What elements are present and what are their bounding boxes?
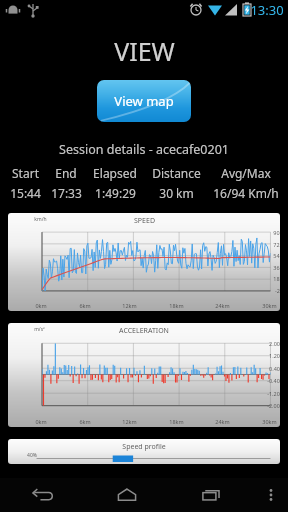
- staticText: 0km: [35, 302, 47, 309]
- staticText: VIEW: [114, 34, 175, 68]
- staticText: 40%: [27, 452, 37, 459]
- staticText: 24km: [215, 302, 230, 309]
- staticText: 12km: [122, 418, 137, 425]
- staticText: 15:44: [10, 185, 41, 201]
- button[interactable]: SPEED: [8, 213, 280, 311]
- button[interactable]: Home: [84, 478, 169, 512]
- staticText: 1:49:29: [95, 185, 136, 201]
- staticText: 12km: [122, 302, 137, 309]
- staticText: km/h: [34, 216, 47, 223]
- staticText: m/s²: [34, 326, 45, 333]
- staticText: Avg/Max: [221, 165, 271, 181]
- staticText: Start: [12, 165, 39, 181]
- staticText: Speed profile: [122, 442, 166, 452]
- staticText: 24km: [215, 418, 230, 425]
- staticText: ACCELERATION: [119, 326, 169, 336]
- staticText: -0.40: [267, 377, 280, 384]
- staticText: Session details - acecafe0201: [59, 141, 229, 158]
- staticText: 6km: [79, 302, 91, 309]
- staticText: 18km: [169, 302, 184, 309]
- staticText: 18km: [169, 418, 184, 425]
- staticText: -1.20: [267, 390, 280, 397]
- staticText: Distance: [152, 165, 201, 181]
- staticText: -2: [275, 287, 280, 294]
- staticText: 16/94 Km/h: [213, 185, 279, 201]
- staticText: 30 km: [159, 185, 194, 201]
- button[interactable]: Back: [0, 478, 84, 512]
- staticText: Elapsed: [93, 165, 137, 181]
- staticText: 90: [273, 229, 280, 236]
- button[interactable]: ACCELERATION: [8, 323, 280, 427]
- staticText: 17:33: [51, 185, 82, 201]
- staticText: 6km: [79, 418, 91, 425]
- staticText: 54: [273, 252, 280, 259]
- staticText: 30km: [262, 418, 277, 425]
- staticText: End: [55, 165, 77, 181]
- button[interactable]: Speed profile: [8, 439, 280, 464]
- staticText: 36: [273, 264, 280, 271]
- staticText: -2.00: [267, 402, 280, 409]
- staticText: View map: [114, 92, 174, 110]
- staticText: 0.40: [269, 365, 280, 372]
- staticText: 1.20: [269, 352, 280, 359]
- staticText: 18: [273, 275, 280, 282]
- staticText: SPEED: [134, 216, 155, 226]
- staticText: 30km: [262, 302, 277, 309]
- staticText: 0km: [35, 418, 47, 425]
- button[interactable]: View map: [97, 80, 191, 122]
- staticText: 2.00: [269, 340, 280, 347]
- button[interactable]: More options: [254, 478, 288, 512]
- button[interactable]: Recents: [169, 478, 254, 512]
- staticText: 13:30: [250, 1, 284, 19]
- staticText: 72: [273, 241, 280, 248]
